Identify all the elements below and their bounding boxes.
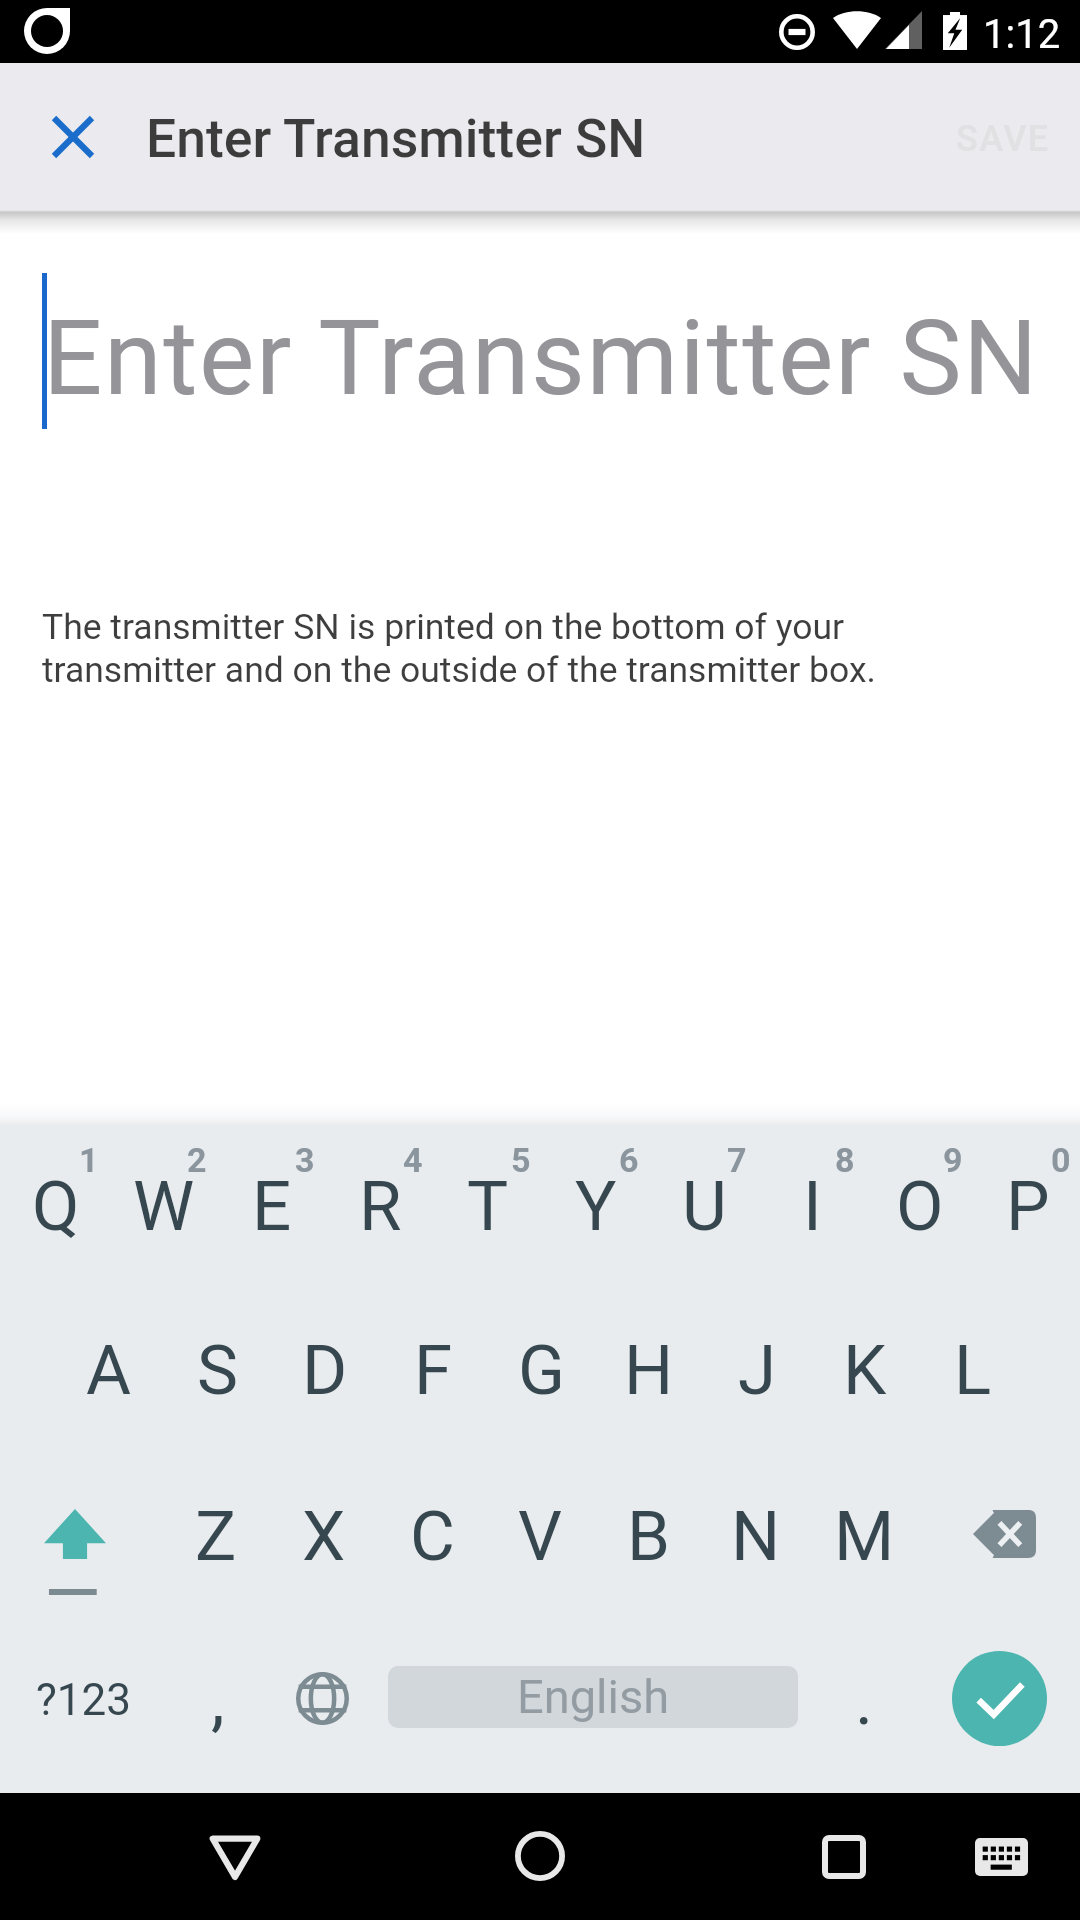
button[interactable]: H <box>595 1289 703 1449</box>
staticText: 5 <box>511 1140 531 1180</box>
staticText: Z <box>195 1496 237 1577</box>
button[interactable]: Y <box>542 1130 650 1280</box>
staticText: H <box>624 1330 674 1411</box>
staticText: 8 <box>835 1140 855 1180</box>
button[interactable]: Q <box>2 1130 110 1280</box>
button[interactable]: V <box>486 1455 594 1615</box>
button[interactable]: C <box>378 1455 486 1615</box>
staticText: M <box>834 1496 895 1577</box>
staticText: Y <box>575 1166 617 1247</box>
button[interactable]: . <box>802 1626 910 1793</box>
button[interactable]: J <box>703 1289 811 1449</box>
button[interactable]: Home <box>464 1793 616 1920</box>
staticText: I <box>803 1166 822 1247</box>
staticText: E <box>252 1166 292 1247</box>
button[interactable]: P <box>974 1130 1080 1280</box>
button[interactable]: W <box>110 1130 218 1280</box>
button[interactable]: N <box>702 1455 810 1615</box>
staticText: A <box>86 1330 132 1411</box>
button[interactable]: Close <box>0 63 150 210</box>
button[interactable]: Switch keyboard <box>951 1793 1080 1920</box>
staticText: L <box>954 1330 992 1411</box>
button[interactable]: S <box>163 1289 271 1449</box>
staticText: 3 <box>295 1140 315 1180</box>
button[interactable]: Z <box>162 1455 270 1615</box>
staticText: U <box>682 1166 727 1247</box>
button[interactable]: Shift <box>0 1460 162 1620</box>
button[interactable]: L <box>919 1289 1027 1449</box>
staticText: The transmitter SN is printed on the bot… <box>42 606 876 691</box>
staticText: X <box>302 1496 346 1577</box>
button[interactable]: , <box>162 1626 270 1793</box>
button[interactable]: T <box>434 1130 542 1280</box>
button[interactable]: B <box>594 1455 702 1615</box>
staticText: F <box>414 1330 453 1411</box>
staticText: English <box>517 1669 670 1724</box>
staticText: 7 <box>727 1140 747 1180</box>
staticText: D <box>302 1330 348 1411</box>
button[interactable]: A <box>55 1289 163 1449</box>
staticText: G <box>518 1330 565 1411</box>
staticText: S <box>197 1330 238 1411</box>
button[interactable]: X <box>270 1455 378 1615</box>
button[interactable]: E <box>218 1130 326 1280</box>
button[interactable]: English <box>378 1626 802 1793</box>
button[interactable]: ?123 <box>0 1626 162 1793</box>
staticText: Enter Transmitter SN <box>146 107 646 170</box>
staticText: ?123 <box>36 1674 131 1726</box>
staticText: , <box>211 1659 225 1740</box>
staticText: K <box>843 1330 887 1411</box>
staticText: Enter Transmitter SN <box>43 297 1040 419</box>
button[interactable]: K <box>811 1289 919 1449</box>
button[interactable]: Recents <box>768 1793 920 1920</box>
staticText: 6 <box>619 1140 639 1180</box>
staticText: Q <box>32 1166 80 1247</box>
staticText: . <box>855 1660 874 1741</box>
staticText: P <box>1006 1166 1050 1247</box>
staticText: 1:12 <box>983 11 1061 58</box>
button[interactable]: O <box>866 1130 974 1280</box>
staticText: C <box>410 1496 455 1577</box>
staticText: 4 <box>403 1140 423 1180</box>
button[interactable]: Back <box>160 1793 312 1920</box>
button[interactable]: G <box>487 1289 595 1449</box>
button[interactable]: Change language <box>270 1626 378 1793</box>
staticText: 0 <box>1051 1140 1071 1180</box>
staticText: R <box>359 1166 402 1247</box>
staticText: J <box>738 1330 777 1411</box>
staticText: B <box>627 1496 670 1577</box>
staticText: O <box>896 1166 944 1247</box>
staticText: N <box>731 1496 781 1577</box>
staticText: 1 <box>79 1140 99 1180</box>
button[interactable]: I <box>758 1130 866 1280</box>
button[interactable]: U <box>650 1130 758 1280</box>
staticText: T <box>467 1166 509 1247</box>
button[interactable]: R <box>326 1130 434 1280</box>
button[interactable]: M <box>810 1455 918 1615</box>
button[interactable]: D <box>271 1289 379 1449</box>
button[interactable]: Enter <box>910 1626 1080 1793</box>
staticText: SAVE <box>956 118 1050 160</box>
staticText: 2 <box>187 1140 207 1180</box>
button[interactable]: F <box>379 1289 487 1449</box>
staticText: W <box>133 1166 195 1247</box>
staticText: V <box>518 1496 562 1577</box>
staticText: 9 <box>943 1140 963 1180</box>
button[interactable]: Delete <box>918 1460 1080 1620</box>
